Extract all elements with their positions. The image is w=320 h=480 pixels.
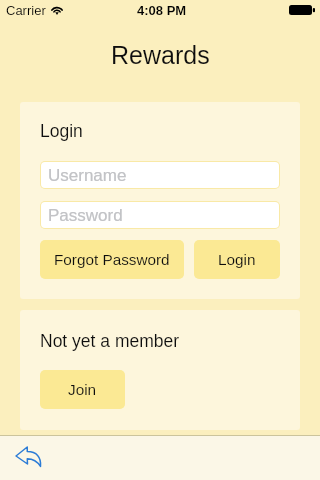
staticText: Login <box>40 121 83 141</box>
staticText: 4:08 PM <box>137 3 187 18</box>
button[interactable]: Password <box>41 202 279 228</box>
staticText: Join <box>68 381 97 398</box>
staticText: Login <box>218 251 256 268</box>
staticText: Not yet a member <box>40 331 180 351</box>
staticText: Username <box>48 166 127 185</box>
button[interactable]: Join <box>40 370 125 409</box>
staticText: Forgot Password <box>54 251 170 268</box>
button[interactable]: Forgot Password <box>40 240 184 279</box>
button[interactable]: Back <box>6 437 52 479</box>
staticText: Password <box>48 206 123 225</box>
staticText: Rewards <box>111 41 210 69</box>
button[interactable]: Username <box>41 162 279 188</box>
button[interactable]: Login <box>194 240 280 279</box>
staticText: Carrier <box>6 3 46 18</box>
